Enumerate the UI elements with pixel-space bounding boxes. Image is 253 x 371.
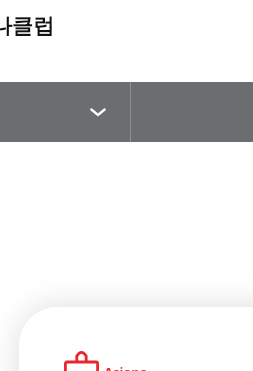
staticText: 아시아나클럽: [0, 13, 54, 39]
button[interactable]: Asiana: [19, 307, 253, 371]
staticText: Asiana: [104, 363, 148, 371]
button[interactable]: Expand: [0, 82, 130, 142]
other: Asiana: [64, 350, 99, 371]
